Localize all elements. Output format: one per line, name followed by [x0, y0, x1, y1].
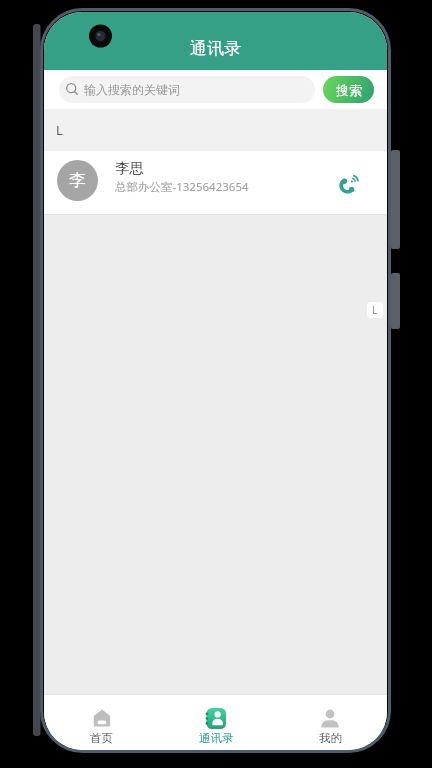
button[interactable]: 李 — [44, 151, 387, 214]
button[interactable] — [339, 173, 361, 195]
button[interactable]: 我的 — [273, 695, 387, 750]
staticText: L — [56, 121, 63, 139]
staticText: 李思 — [115, 159, 144, 177]
staticText: 搜索 — [336, 82, 362, 98]
button[interactable]: 输入搜索的关键词 — [59, 76, 315, 103]
staticText: 首页 — [90, 731, 113, 745]
button[interactable]: 通讯录 — [159, 695, 273, 750]
staticText: 李 — [69, 170, 86, 191]
staticText: 输入搜索的关键词 — [84, 82, 180, 97]
staticText: 通讯录 — [190, 38, 241, 59]
button[interactable]: 搜索 — [323, 76, 374, 103]
staticText: L — [372, 303, 378, 317]
button[interactable]: 首页 — [44, 695, 159, 750]
staticText: 总部办公室-13256423654 — [115, 179, 249, 195]
staticText: 我的 — [319, 731, 342, 745]
staticText: 通讯录 — [199, 731, 234, 745]
